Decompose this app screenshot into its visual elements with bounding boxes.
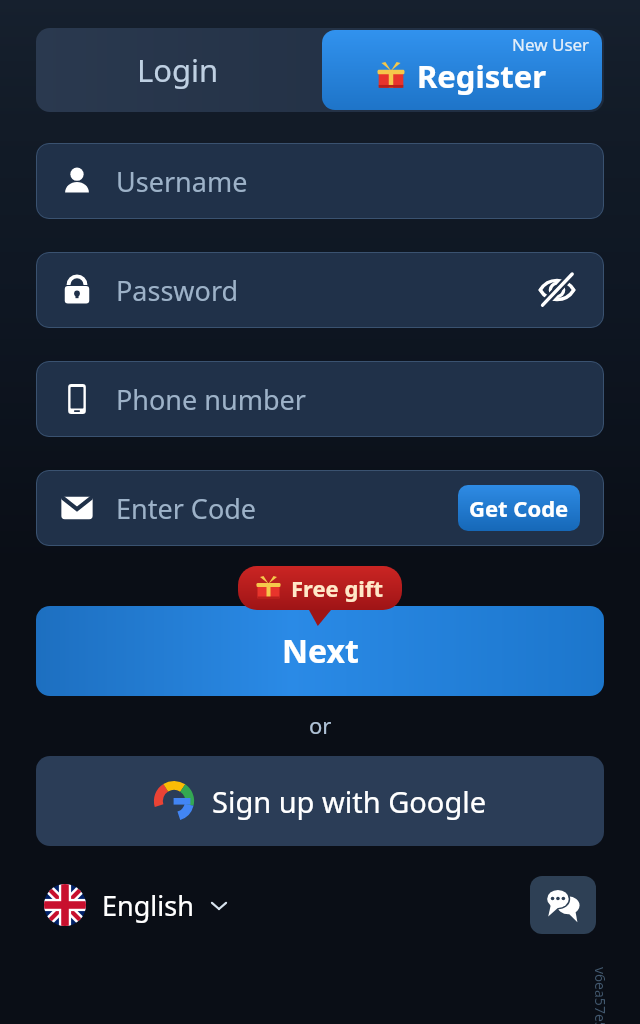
staticText: Password [116,272,534,309]
staticText: v6ea57e55 [591,967,610,1024]
button[interactable]: Free gift [238,566,402,610]
button[interactable]: Enter Code [36,470,604,546]
staticText: Login [137,49,219,91]
staticText: Sign up with Google [212,782,487,821]
staticText: Next [282,629,359,673]
staticText: Free gift [291,573,384,603]
staticText: Phone number [116,381,580,418]
button[interactable]: Password [36,252,604,328]
button[interactable]: Next [36,606,604,696]
staticText: Enter Code [116,490,458,527]
staticText: New User [512,33,590,56]
button[interactable]: Username [36,143,604,219]
button[interactable]: Login [36,28,320,112]
staticText: Register [417,55,547,97]
button[interactable]: Toggle password visibility [534,267,580,313]
button[interactable]: English [44,876,230,934]
staticText: Get Code [469,493,569,523]
button[interactable]: Chat support [530,876,596,934]
button[interactable]: Phone number [36,361,604,437]
staticText: or [309,710,332,740]
button[interactable]: Get Code [458,485,580,531]
button[interactable]: New User [322,30,602,110]
button[interactable]: Sign up with Google [36,756,604,846]
staticText: English [102,887,194,924]
staticText: Username [116,163,580,200]
